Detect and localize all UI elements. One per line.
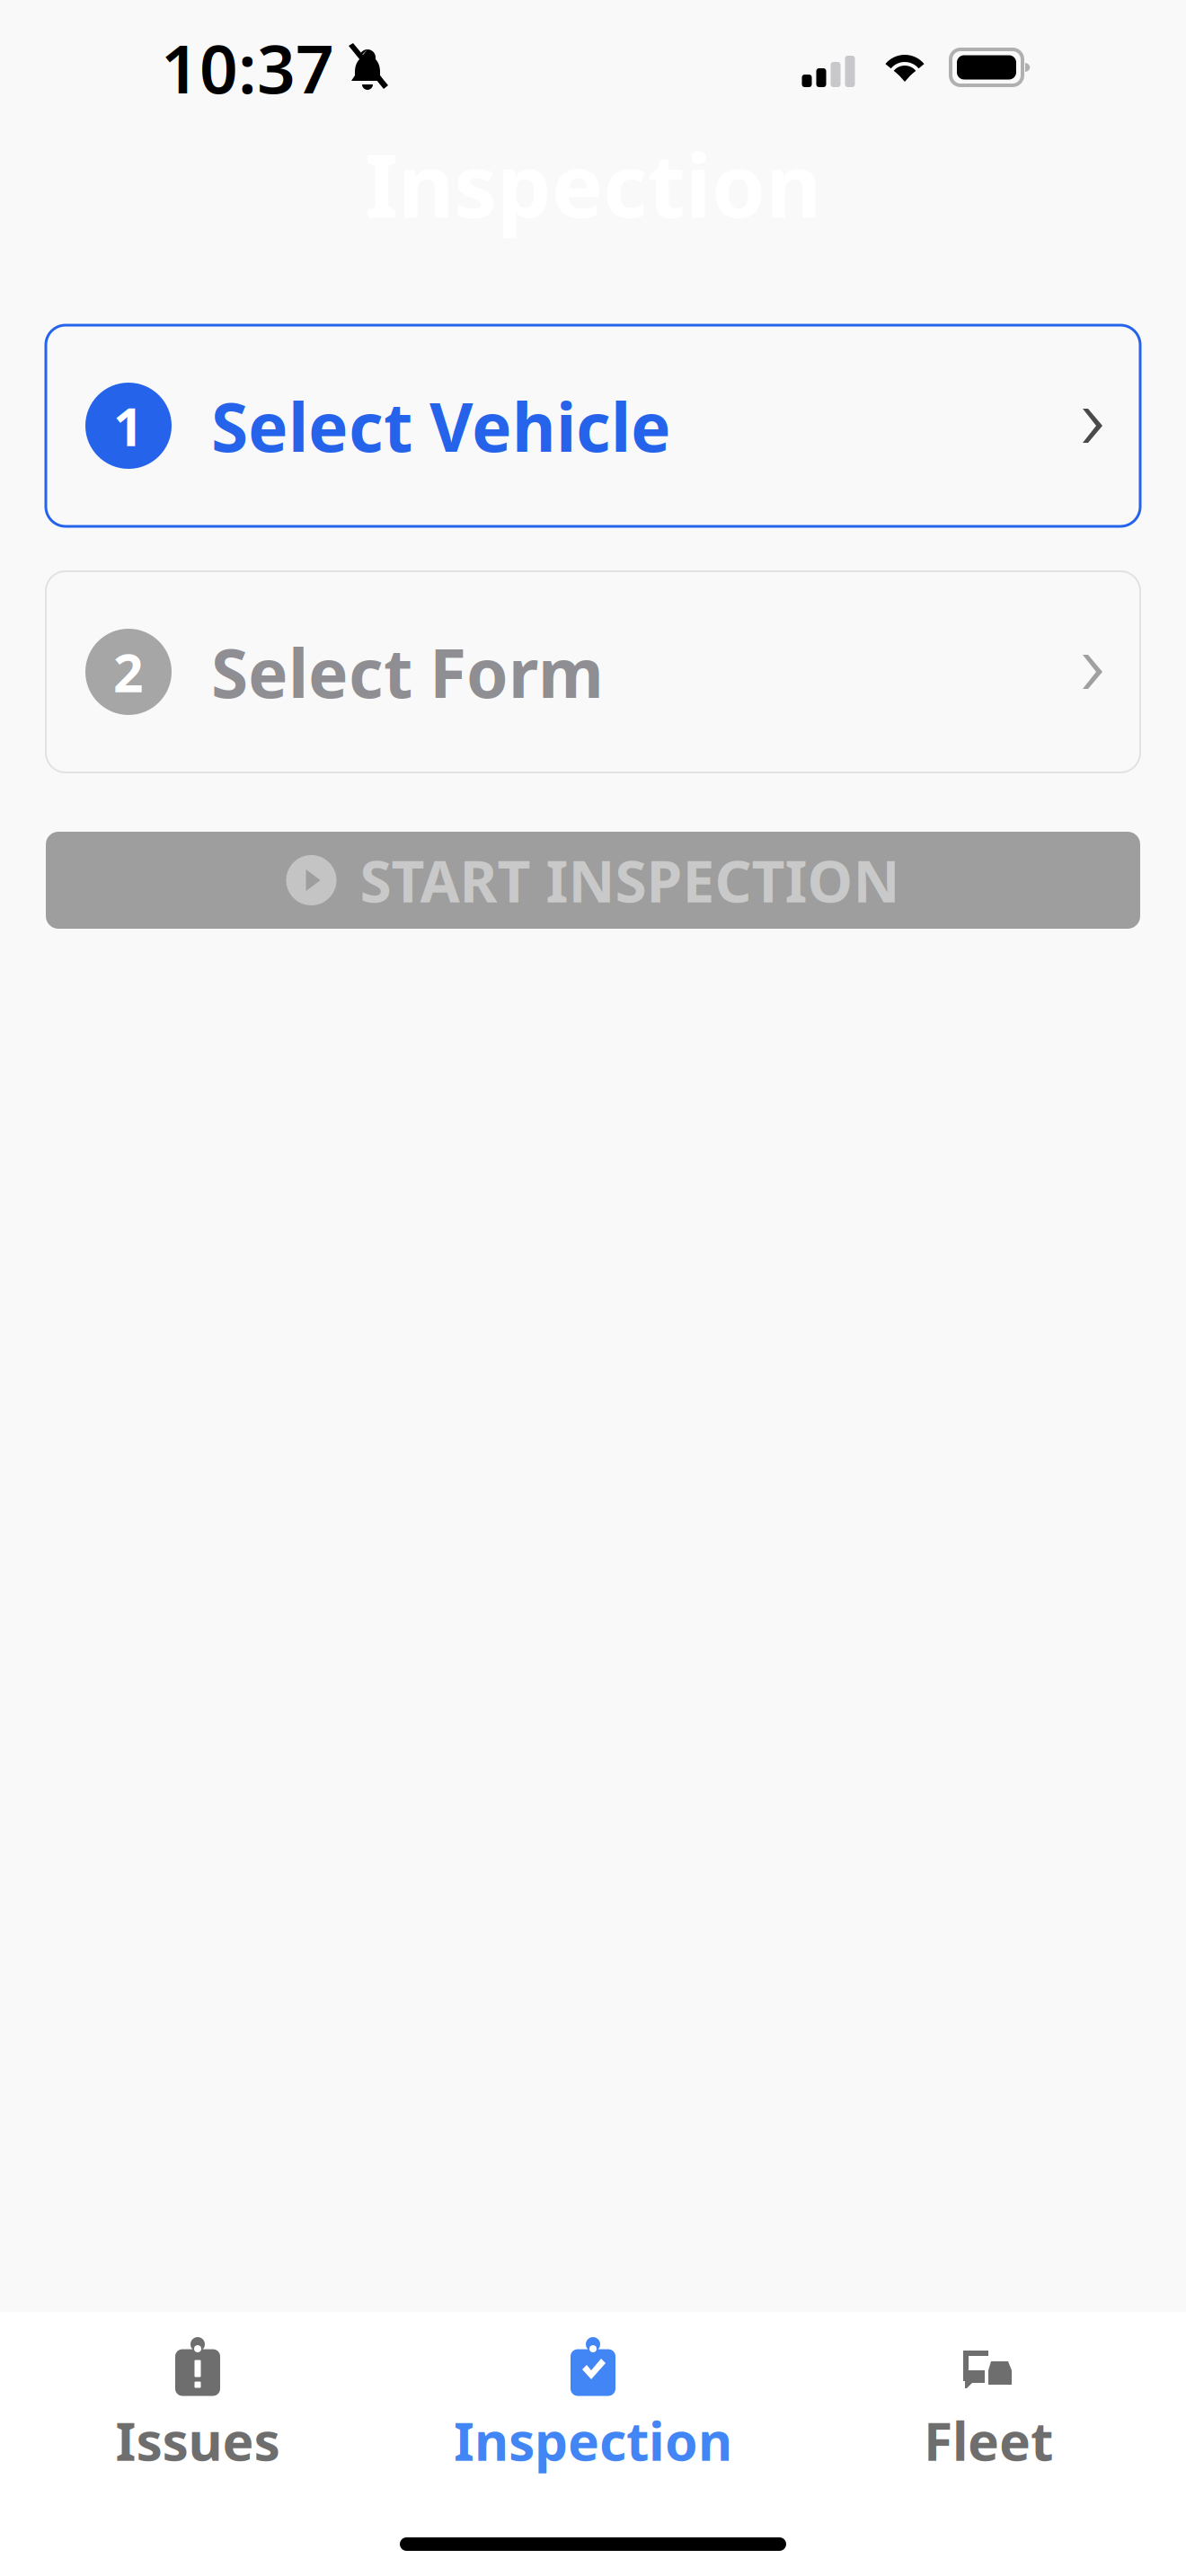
staticText: START INSPECTION [360,842,900,918]
staticText: 10:37 [161,23,334,112]
button[interactable]: Issues [0,2312,395,2475]
staticText: Fleet [924,2405,1053,2475]
button[interactable]: Fleet [791,2312,1186,2475]
button[interactable]: 1 [46,325,1140,526]
staticText: Issues [115,2405,280,2475]
staticText: 1 [113,391,144,461]
staticText: Select Form [211,627,604,716]
staticText: 2 [113,637,144,707]
staticText: Inspection [454,2405,732,2475]
button[interactable]: START INSPECTION [46,832,1140,929]
button[interactable]: Inspection [395,2312,791,2475]
button[interactable]: 2 [46,571,1140,772]
staticText: Select Vehicle [211,381,671,470]
